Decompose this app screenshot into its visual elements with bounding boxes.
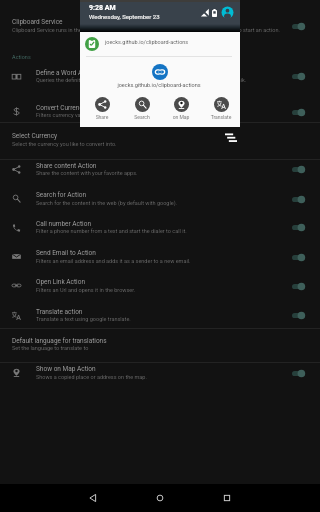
button[interactable]: Translate xyxy=(204,95,238,123)
button[interactable]: Search xyxy=(125,95,159,123)
button[interactable]: Search for Action xyxy=(0,188,320,217)
button[interactable]: Send Email to Action xyxy=(0,247,320,276)
staticText: Share content Action xyxy=(36,162,97,170)
staticText: Default language for translations xyxy=(12,337,107,345)
staticText: Convert Currency Action xyxy=(36,104,107,112)
staticText: Set the language to translate to xyxy=(12,345,306,351)
staticText: Filter a phone number from a text and st… xyxy=(36,228,290,234)
staticText: on Map xyxy=(164,114,198,120)
staticText: Send Email to Action xyxy=(36,249,96,257)
staticText: Queries the definition of a word. Curren… xyxy=(36,77,290,83)
staticText: Translate action xyxy=(36,308,83,316)
staticText: Share the content with your favorite app… xyxy=(36,170,290,176)
staticText: Open Link Action xyxy=(36,278,85,286)
button[interactable]: Home xyxy=(154,492,166,504)
button[interactable]: Translate action xyxy=(0,305,320,328)
staticText: Define a Word Action xyxy=(36,69,97,77)
other: Signal xyxy=(200,8,209,17)
staticText: Search for Action xyxy=(36,191,87,199)
button[interactable]: Share content Action xyxy=(0,159,320,188)
staticText: Filters currency values and converts the… xyxy=(36,112,290,118)
staticText: Call number Action xyxy=(36,220,91,228)
staticText: Filters an Url and opens it in the brows… xyxy=(36,287,290,293)
staticText: Shows a copied place or address on the m… xyxy=(36,374,290,380)
staticText: Search for the content in the web (by de… xyxy=(36,200,290,206)
button[interactable]: on Map xyxy=(164,95,198,123)
staticText: Clipboard Service runs in the background… xyxy=(12,27,289,33)
staticText: Filters an email address and adds it as … xyxy=(36,258,290,264)
other: Notification xyxy=(225,132,237,144)
staticText: 9:28 AM xyxy=(89,4,116,12)
staticText: joecks.github.io/clipboard-actions xyxy=(80,82,238,88)
button[interactable]: Select Currency xyxy=(0,123,320,159)
other: Battery xyxy=(212,9,217,17)
staticText: Select Currency xyxy=(12,132,58,140)
staticText: Show on Map Action xyxy=(36,365,96,373)
button[interactable]: Open Link Action xyxy=(0,276,320,305)
button[interactable]: Recent apps xyxy=(221,492,233,504)
button[interactable]: Account xyxy=(221,6,234,19)
staticText: joecks.github.io/clipboard-actions xyxy=(105,39,189,45)
button[interactable]: Convert Currency Action xyxy=(0,99,320,122)
button[interactable]: Define a Word Action xyxy=(0,66,320,99)
staticText: Search xyxy=(125,114,159,120)
staticText: Select the currency you like to convert … xyxy=(12,141,306,147)
button[interactable]: Call number Action xyxy=(0,217,320,247)
button[interactable]: Default language for translations xyxy=(0,329,320,362)
staticText: Share xyxy=(85,114,119,120)
button[interactable]: Share xyxy=(85,95,119,123)
button[interactable]: Show on Map Action xyxy=(0,362,320,392)
staticText: Translate a text using google translate. xyxy=(36,316,290,322)
staticText: Clipboard Service xyxy=(12,18,63,26)
staticText: Wednesday, September 23 xyxy=(89,13,160,20)
button[interactable]: Clipboard Service xyxy=(0,10,320,46)
staticText: Translate xyxy=(204,114,238,120)
staticText: Actions xyxy=(12,54,31,60)
button[interactable]: Back xyxy=(87,492,99,504)
